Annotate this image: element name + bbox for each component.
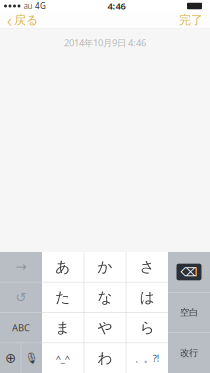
staticText: ら — [140, 319, 155, 337]
staticText: わ — [97, 349, 112, 367]
button[interactable]: Switch keyboard — [0, 343, 21, 373]
button[interactable]: ↺ — [0, 282, 42, 312]
button[interactable]: ‹ — [2, 12, 43, 28]
staticText: 4:46 — [107, 0, 125, 12]
staticText: 、。?! — [135, 352, 160, 364]
button[interactable]: は — [126, 282, 168, 312]
button[interactable]: Dictation — [21, 343, 42, 373]
button[interactable]: 空白 — [168, 292, 210, 332]
button[interactable]: わ — [84, 343, 126, 373]
staticText: た — [55, 288, 70, 306]
button[interactable]: な — [84, 282, 126, 312]
button[interactable]: ら — [126, 313, 168, 343]
staticText: → — [15, 259, 26, 274]
staticText: か — [97, 258, 112, 276]
button[interactable]: ま — [42, 313, 84, 343]
staticText: ‹ — [7, 8, 12, 32]
staticText: ^_^ — [56, 352, 70, 364]
staticText: や — [97, 319, 112, 337]
staticText: ABC — [12, 321, 30, 334]
button[interactable]: た — [42, 282, 84, 312]
staticText: は — [140, 288, 155, 306]
staticText: な — [97, 288, 112, 306]
staticText: 戻る — [14, 13, 38, 27]
staticText: 2014年10月9日 4:46 — [64, 36, 146, 49]
button[interactable]: や — [84, 313, 126, 343]
button[interactable]: ^_^ — [42, 343, 84, 373]
staticText: 改行 — [180, 347, 198, 359]
button[interactable]: か — [84, 252, 126, 282]
staticText: au — [23, 1, 32, 11]
button[interactable]: ABC — [0, 313, 42, 343]
staticText: さ — [140, 258, 155, 276]
staticText: 完了 — [179, 13, 203, 27]
button[interactable]: Delete — [168, 252, 210, 292]
staticText: あ — [55, 258, 70, 276]
button[interactable]: → — [0, 252, 42, 282]
staticText: ま — [55, 319, 70, 337]
button[interactable]: あ — [42, 252, 84, 282]
staticText: 🎙 — [25, 352, 39, 364]
staticText: ⌫ — [180, 265, 197, 279]
staticText: 空白 — [180, 307, 198, 318]
button[interactable]: さ — [126, 252, 168, 282]
button[interactable]: 改行 — [168, 333, 210, 373]
staticText: ↺ — [15, 290, 26, 305]
button[interactable]: 完了 — [174, 12, 208, 28]
staticText: ⊕ — [5, 350, 16, 366]
button[interactable]: 、。?! — [126, 343, 168, 373]
staticText: 4G — [35, 1, 46, 11]
